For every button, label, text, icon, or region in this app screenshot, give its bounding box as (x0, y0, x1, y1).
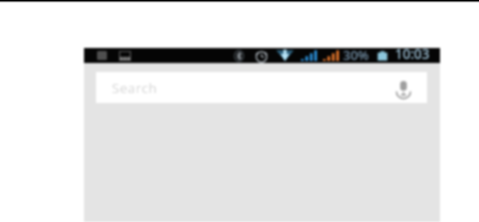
button[interactable]: Voice search (392, 76, 414, 98)
button[interactable]: Search (96, 72, 427, 103)
staticText: 30% (343, 46, 369, 61)
staticText: Search (112, 79, 158, 97)
staticText: 10:03 (395, 45, 430, 60)
